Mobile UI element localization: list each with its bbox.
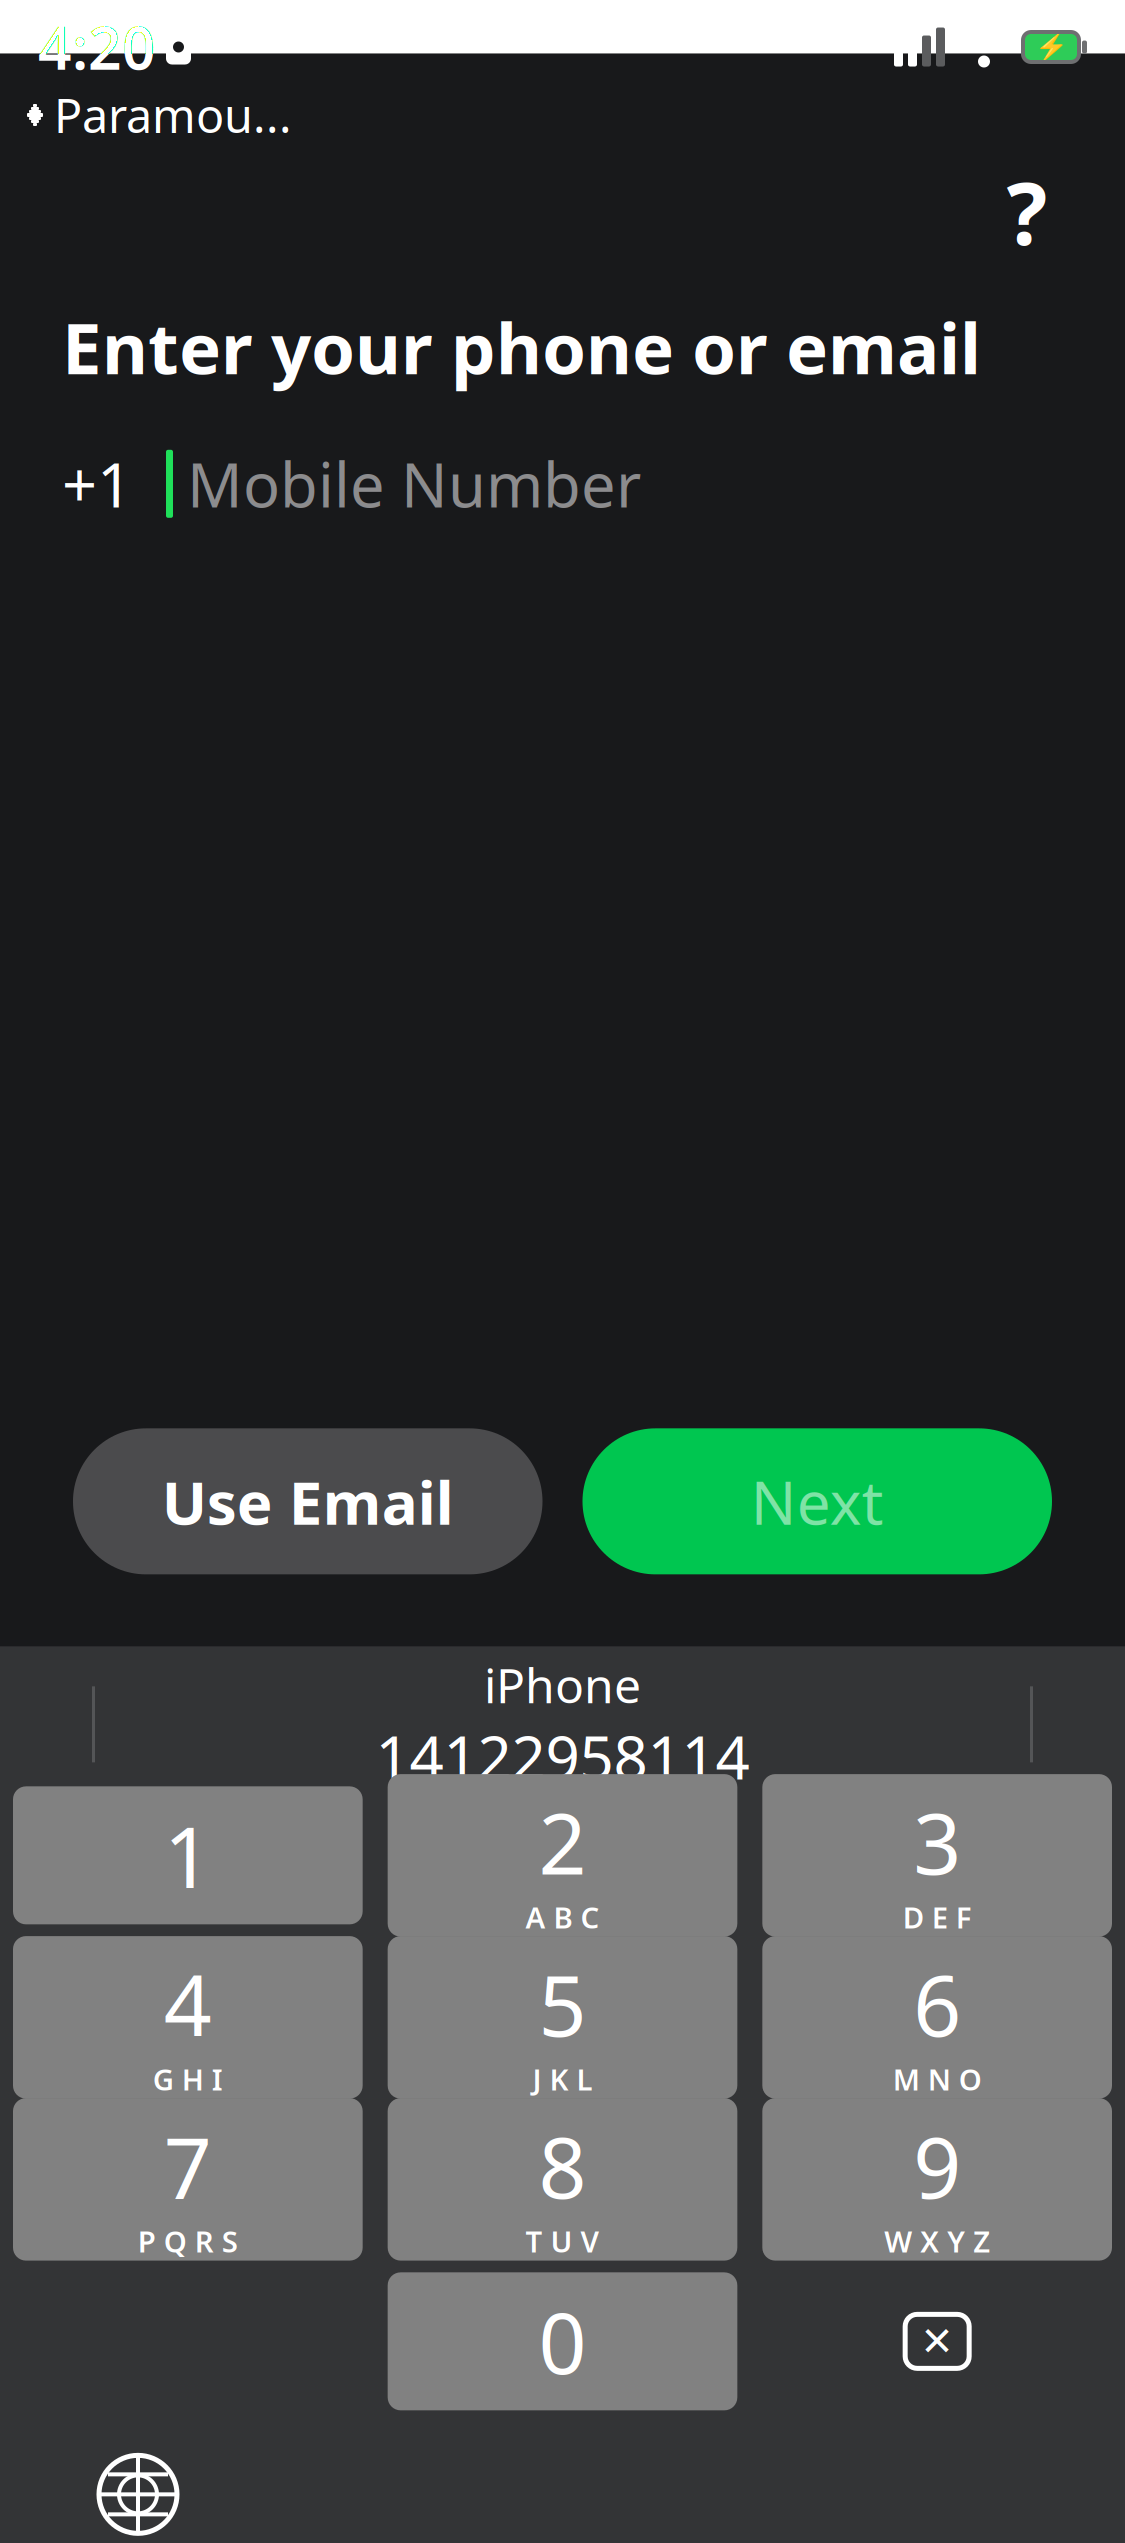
- button[interactable]: Next keyboard: [76, 2438, 200, 2543]
- button[interactable]: Use Email: [73, 1428, 542, 1574]
- staticText: ⚡: [1034, 32, 1067, 62]
- staticText: 8: [538, 2110, 586, 2222]
- staticText: P Q R S: [138, 2222, 238, 2261]
- staticText: 4:20: [38, 8, 156, 86]
- staticText: 5: [538, 1948, 586, 2060]
- staticText: Paramou...: [54, 84, 292, 146]
- staticText: 0: [538, 2286, 586, 2397]
- button[interactable]: 0: [388, 2272, 737, 2410]
- staticText: 3: [913, 1786, 961, 1898]
- staticText: 9: [913, 2110, 961, 2222]
- button[interactable]: 2: [388, 1786, 737, 1924]
- staticText: M N O: [893, 2060, 982, 2099]
- staticText: iPhone: [484, 1653, 641, 1716]
- staticText: Next: [751, 1461, 884, 1541]
- staticText: 7: [164, 2110, 212, 2222]
- staticText: Enter your phone or email: [62, 300, 981, 394]
- button[interactable]: 8: [388, 2110, 737, 2248]
- button[interactable]: +1: [0, 436, 1125, 532]
- staticText: J K L: [532, 2060, 592, 2099]
- button[interactable]: Paramou...: [26, 78, 292, 152]
- button[interactable]: Next: [582, 1428, 1052, 1574]
- staticText: Use Email: [162, 1461, 454, 1541]
- staticText: ?: [1006, 155, 1047, 269]
- button[interactable]: iPhone: [335, 1653, 789, 1796]
- staticText: 14122958114: [375, 1716, 749, 1796]
- button[interactable]: 9: [762, 2110, 1112, 2248]
- button[interactable]: 6: [762, 1948, 1112, 2086]
- staticText: 4: [164, 1948, 212, 2060]
- button[interactable]: Help: [979, 164, 1075, 260]
- staticText: Mobile Number: [187, 443, 641, 524]
- button[interactable]: 4: [13, 1948, 363, 2086]
- staticText: T U V: [525, 2222, 599, 2261]
- staticText: W X Y Z: [884, 2222, 990, 2261]
- button[interactable]: 1: [13, 1786, 363, 1924]
- button[interactable]: 3: [762, 1786, 1112, 1924]
- staticText: 1: [164, 1800, 212, 1911]
- staticText: ✕: [920, 2319, 954, 2364]
- button[interactable]: 5: [388, 1948, 737, 2086]
- staticText: 6: [913, 1948, 961, 2060]
- staticText: 2: [538, 1786, 586, 1898]
- staticText: D E F: [903, 1898, 972, 1937]
- staticText: G H I: [153, 2060, 223, 2099]
- staticText: +1: [62, 443, 132, 524]
- button[interactable]: 7: [13, 2110, 363, 2248]
- button[interactable]: Delete: [762, 2272, 1112, 2410]
- staticText: A B C: [525, 1898, 599, 1937]
